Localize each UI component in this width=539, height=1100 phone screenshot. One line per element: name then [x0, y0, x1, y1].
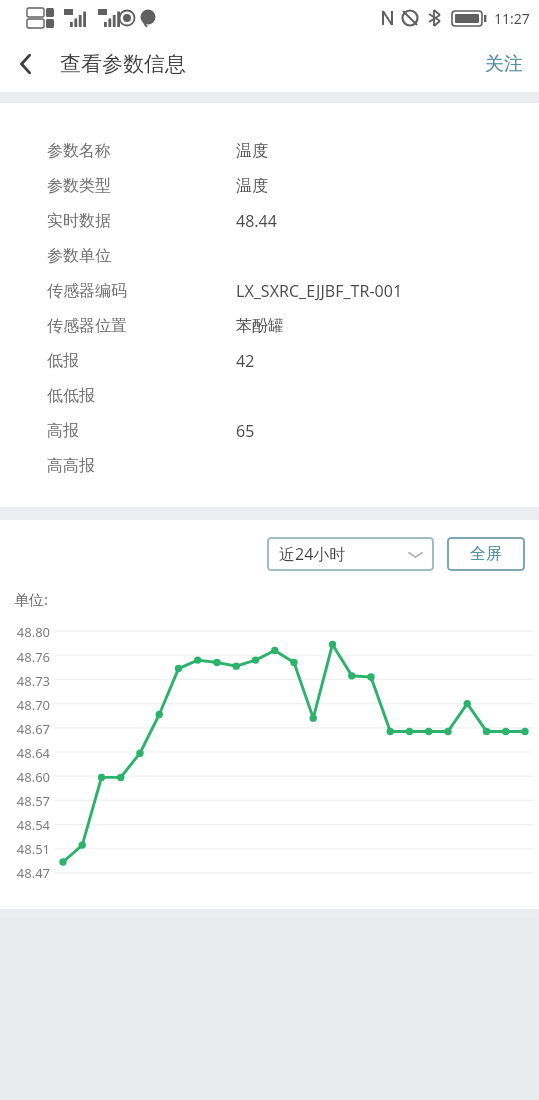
staticText: 48.57	[8, 792, 50, 810]
staticText: 48.80	[8, 623, 50, 641]
staticText: 48.44	[236, 210, 277, 232]
staticText: 48.64	[8, 744, 50, 762]
staticText: 48.60	[8, 768, 50, 786]
button[interactable]: 关注	[469, 36, 539, 92]
staticText: 48.67	[8, 720, 50, 738]
staticText: 高高报	[47, 456, 95, 476]
staticText: 48.51	[8, 840, 50, 858]
staticText: 单位:	[14, 589, 49, 609]
staticText: 苯酚罐	[236, 316, 284, 336]
button[interactable]: 实时数据	[0, 203, 539, 238]
button[interactable]: 高报	[0, 413, 539, 448]
staticText: 48.47	[8, 864, 50, 882]
staticText: 传感器位置	[47, 316, 127, 336]
button[interactable]: 参数名称	[0, 133, 539, 168]
staticText: 48.54	[8, 816, 50, 834]
staticText: 48.76	[8, 648, 50, 666]
staticText: 高报	[47, 421, 79, 441]
staticText: 温度	[236, 176, 268, 196]
staticText: 关注	[485, 52, 523, 76]
button[interactable]: 全屏	[447, 537, 525, 571]
staticText: 48.73	[8, 672, 50, 690]
button[interactable]: 参数类型	[0, 168, 539, 203]
staticText: 传感器编码	[47, 281, 127, 301]
staticText: 11:27	[494, 9, 530, 28]
button[interactable]: 传感器编码	[0, 273, 539, 308]
button[interactable]: Back	[0, 36, 52, 92]
staticText: 42	[236, 350, 255, 372]
staticText: 查看参数信息	[60, 51, 186, 77]
button[interactable]: 近24小时	[267, 537, 434, 571]
button[interactable]: 高高报	[0, 448, 539, 483]
staticText: 全屏	[470, 544, 502, 564]
staticText: 实时数据	[47, 211, 111, 231]
staticText: 参数名称	[47, 141, 111, 161]
staticText: 参数类型	[47, 176, 111, 196]
staticText: LX_SXRC_EJJBF_TR-001	[236, 280, 403, 302]
button[interactable]: 低低报	[0, 378, 539, 413]
button[interactable]: 参数单位	[0, 238, 539, 273]
staticText: 低报	[47, 351, 79, 371]
staticText: 65	[236, 420, 255, 442]
staticText: 参数单位	[47, 246, 111, 266]
staticText: 温度	[236, 141, 268, 161]
button[interactable]: 低报	[0, 343, 539, 378]
button[interactable]: 传感器位置	[0, 308, 539, 343]
staticText: 低低报	[47, 386, 95, 406]
staticText: 近24小时	[279, 543, 346, 565]
staticText: 48.70	[8, 696, 50, 714]
